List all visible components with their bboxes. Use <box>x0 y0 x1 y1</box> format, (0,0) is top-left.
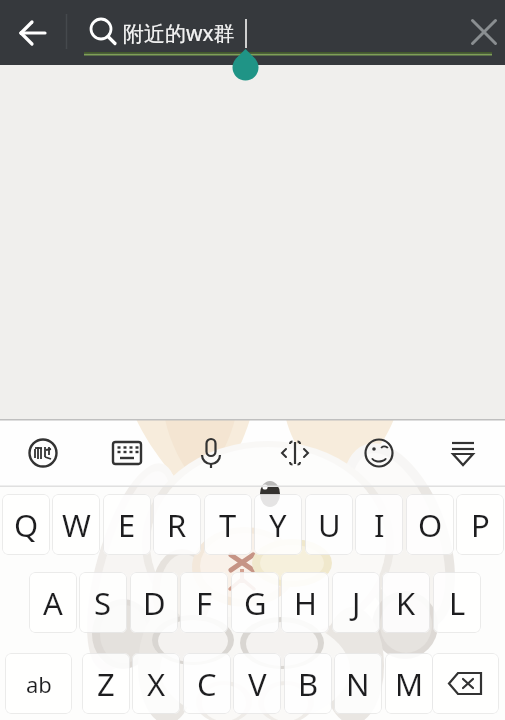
button[interactable]: Z <box>82 653 130 714</box>
staticText: ab <box>26 669 52 699</box>
button[interactable]: A <box>29 572 77 633</box>
button[interactable]: I <box>355 494 403 555</box>
button[interactable]: P <box>456 494 504 555</box>
button[interactable]: Y <box>254 494 302 555</box>
staticText: 附近的wx群 <box>123 19 235 48</box>
staticText: I <box>374 504 385 546</box>
staticText: S <box>94 582 112 624</box>
staticText: X <box>147 663 166 705</box>
button[interactable]: S <box>79 572 127 633</box>
button[interactable]: R <box>153 494 201 555</box>
button[interactable]: J <box>332 572 380 633</box>
button[interactable]: U <box>305 494 353 555</box>
staticText: G <box>244 582 267 624</box>
button[interactable]: K <box>382 572 430 633</box>
staticText: L <box>449 582 466 624</box>
staticText: F <box>196 582 213 624</box>
staticText: C <box>197 663 217 705</box>
staticText: W <box>62 504 91 546</box>
staticText: Z <box>97 663 115 705</box>
button[interactable] <box>421 419 505 487</box>
staticText: O <box>418 504 443 546</box>
button[interactable] <box>0 419 85 487</box>
button[interactable] <box>0 0 60 65</box>
staticText: R <box>167 504 187 546</box>
staticText: A <box>43 582 63 624</box>
button[interactable]: B <box>284 653 332 714</box>
staticText: V <box>248 663 267 705</box>
staticText: T <box>219 504 237 546</box>
button[interactable]: D <box>130 572 178 633</box>
button[interactable]: L <box>433 572 481 633</box>
button[interactable]: F <box>180 572 228 633</box>
staticText: N <box>346 663 370 705</box>
button[interactable]: M <box>385 653 433 714</box>
staticText: U <box>318 504 341 546</box>
button[interactable]: W <box>52 494 100 555</box>
button[interactable] <box>169 419 253 487</box>
button[interactable]: V <box>233 653 281 714</box>
button[interactable]: C <box>183 653 231 714</box>
button[interactable] <box>337 419 421 487</box>
staticText: E <box>118 504 136 546</box>
staticText: D <box>143 582 166 624</box>
staticText: M <box>395 663 424 705</box>
button[interactable]: O <box>406 494 454 555</box>
staticText: H <box>294 582 317 624</box>
button[interactable] <box>432 653 499 714</box>
button[interactable] <box>85 419 169 487</box>
staticText: Y <box>269 504 287 546</box>
staticText: B <box>298 663 319 705</box>
button[interactable]: G <box>231 572 279 633</box>
button[interactable]: X <box>132 653 180 714</box>
button[interactable]: H <box>281 572 329 633</box>
button[interactable]: T <box>204 494 252 555</box>
staticText: J <box>352 582 361 624</box>
staticText: P <box>471 504 490 546</box>
button[interactable] <box>445 0 505 65</box>
button[interactable] <box>253 419 337 487</box>
staticText: K <box>396 582 416 624</box>
staticText: Q <box>14 504 39 546</box>
button[interactable]: Q <box>2 494 50 555</box>
button[interactable]: ab <box>5 653 72 714</box>
button[interactable]: N <box>334 653 382 714</box>
button[interactable]: E <box>103 494 151 555</box>
